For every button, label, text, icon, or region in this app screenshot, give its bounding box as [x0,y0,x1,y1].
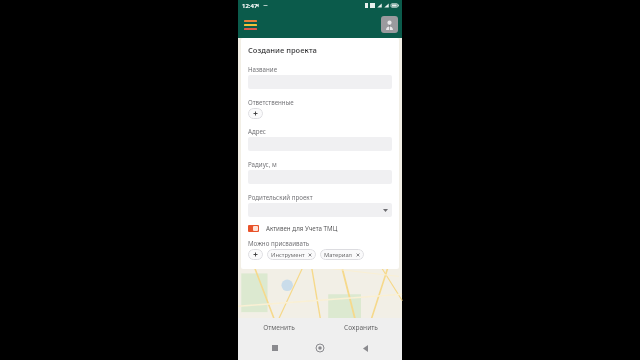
staticText: Родительский проект [248,193,313,201]
staticText: Название [248,65,278,73]
button[interactable]: Последние приложения [267,340,283,356]
button[interactable]: Добавить [248,249,263,260]
staticText: Можно присваивать [248,239,310,247]
staticText: Радиус, м [248,160,277,168]
button[interactable]: Профиль [381,16,398,33]
button[interactable]: Сохранить [320,318,402,336]
button[interactable]: Инструмент [267,249,316,260]
button[interactable]: Назад [357,340,373,356]
staticText: Создание проекта [248,45,317,55]
staticText: 12:47 [242,2,258,10]
staticText: Адрес [248,127,266,135]
staticText: Отменить [263,323,295,332]
button[interactable]: Активен для Учета ТМЦ [248,224,392,232]
button[interactable]: Меню [241,16,259,34]
button[interactable]: Добавить [248,108,263,119]
staticText: Ответственные [248,98,294,106]
staticText: Инструмент [271,251,305,259]
staticText: Сохранить [344,323,378,332]
staticText: Материал [324,251,353,259]
button[interactable]: Отменить [238,318,320,336]
button[interactable]: Главный экран [312,340,328,356]
button[interactable]: Выбрать родительский проект [248,203,392,217]
staticText: Активен для Учета ТМЦ [266,224,338,232]
button[interactable]: Материал [320,249,364,260]
